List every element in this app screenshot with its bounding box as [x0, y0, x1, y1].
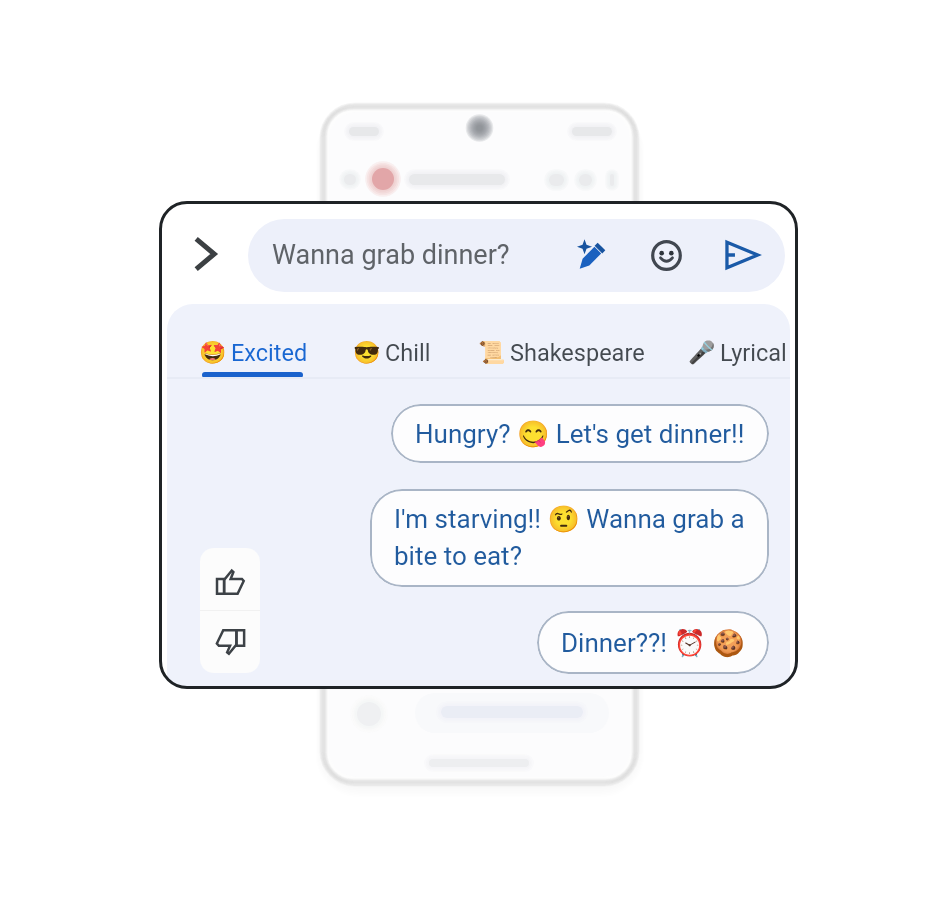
button[interactable]: Hungry? 😋 Let's get dinner!!: [391, 404, 769, 463]
button[interactable]: 😎: [353, 330, 431, 376]
button[interactable]: 📜: [478, 330, 645, 376]
button[interactable]: I'm starving!! 🤨 Wanna grab a bite to ea…: [370, 489, 769, 587]
button[interactable]: Wanna grab dinner?: [248, 219, 785, 292]
staticText: 🤩: [199, 340, 227, 366]
button[interactable]: Thumbs up: [200, 548, 260, 610]
staticText: Dinner??! ⏰ 🍪: [561, 628, 745, 658]
button[interactable]: 🤩: [199, 330, 308, 376]
staticText: I'm starving!! 🤨 Wanna grab a bite to ea…: [394, 504, 745, 572]
staticText: Lyrical: [720, 339, 787, 367]
staticText: 📜: [478, 340, 506, 366]
button[interactable]: Dinner??! ⏰ 🍪: [537, 611, 769, 674]
staticText: Wanna grab dinner?: [272, 239, 510, 271]
button[interactable]: Magic compose: [570, 232, 616, 278]
button[interactable]: Expand: [178, 229, 228, 279]
staticText: 😎: [353, 340, 381, 366]
button[interactable]: Send: [719, 232, 765, 278]
button[interactable]: Emoji: [643, 232, 689, 278]
staticText: 🎤: [688, 340, 716, 366]
staticText: Hungry? 😋 Let's get dinner!!: [415, 419, 745, 449]
button[interactable]: Thumbs down: [200, 611, 260, 673]
button[interactable]: 🎤: [688, 330, 787, 376]
staticText: Excited: [231, 339, 308, 367]
staticText: Chill: [385, 339, 431, 367]
staticText: Shakespeare: [510, 339, 645, 367]
